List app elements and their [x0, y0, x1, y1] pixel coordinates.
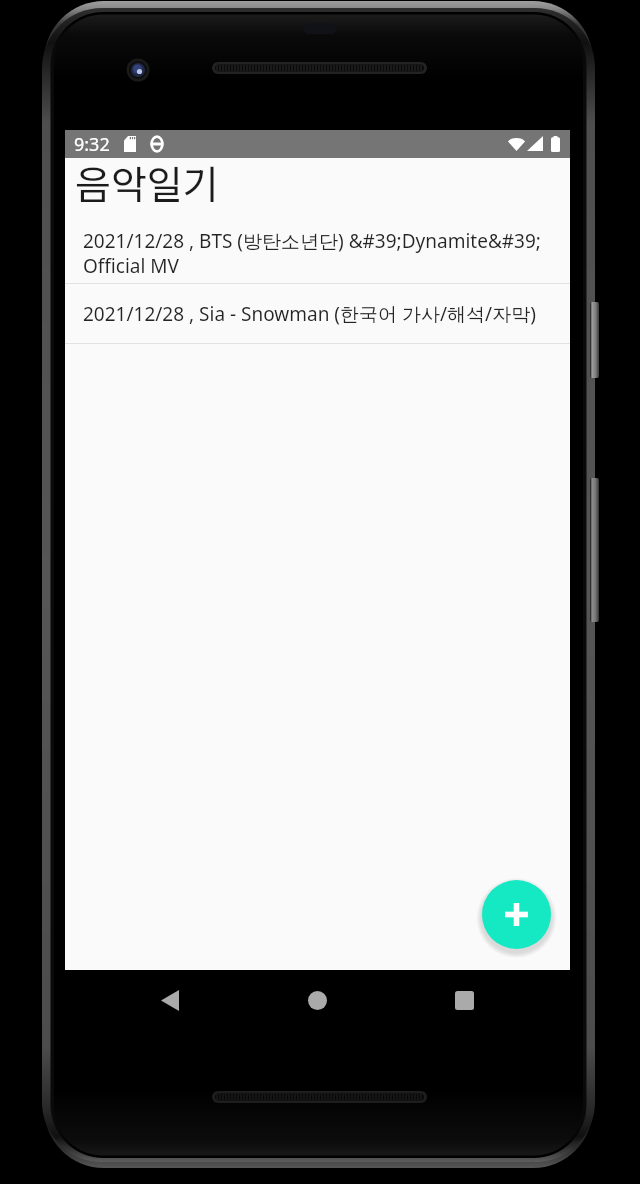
staticText: 2021/12/28 , BTS (방탄소년단) &#39;Dynamite&#… [83, 228, 559, 278]
staticText: 2021/12/28 , Sia - Snowman (한국어 가사/해석/자막… [83, 301, 536, 327]
button[interactable]: 2021/12/28 , Sia - Snowman (한국어 가사/해석/자막… [65, 284, 570, 344]
button[interactable]: Add new entry [482, 880, 551, 949]
button[interactable]: 2021/12/28 , BTS (방탄소년단) &#39;Dynamite&#… [65, 216, 570, 284]
button[interactable]: Recent apps [432, 970, 496, 1030]
staticText: 음악일기 [75, 154, 219, 210]
staticText: 9:32 [74, 132, 110, 157]
button[interactable]: Home [285, 970, 349, 1030]
button[interactable]: Back [138, 970, 202, 1030]
